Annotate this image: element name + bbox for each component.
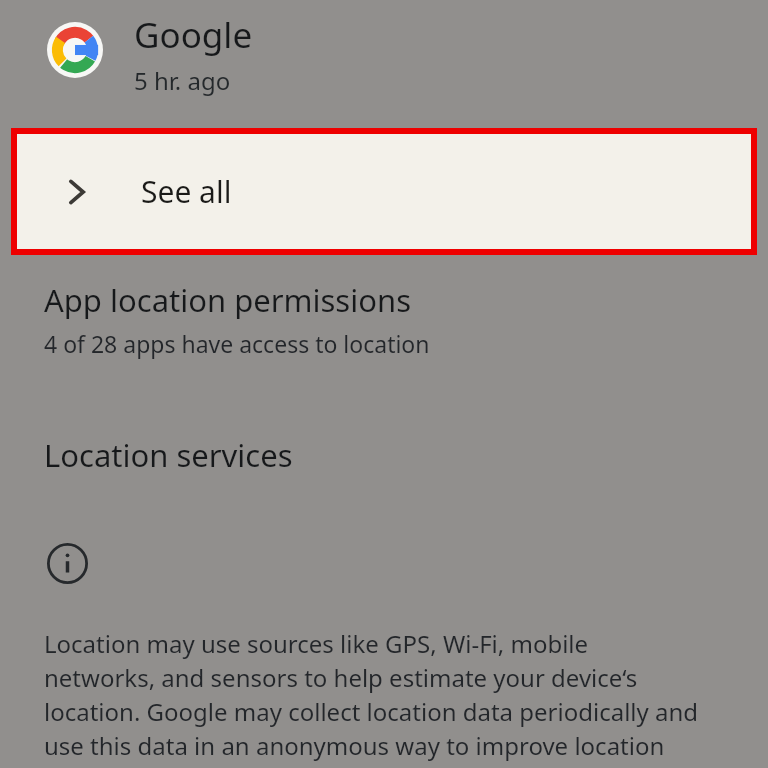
staticText: Location may use sources like GPS, Wi-Fi… [44, 627, 704, 768]
button[interactable]: See all [17, 134, 751, 249]
staticText: 4 of 28 apps have access to location [44, 328, 430, 359]
staticText: App location permissions [44, 279, 411, 321]
staticText: 5 hr. ago [134, 64, 231, 97]
other: Information [47, 543, 88, 584]
staticText: See all [141, 171, 232, 212]
button[interactable]: App location permissions [44, 279, 664, 359]
staticText: Location services [44, 434, 293, 476]
staticText: Google [134, 11, 253, 59]
